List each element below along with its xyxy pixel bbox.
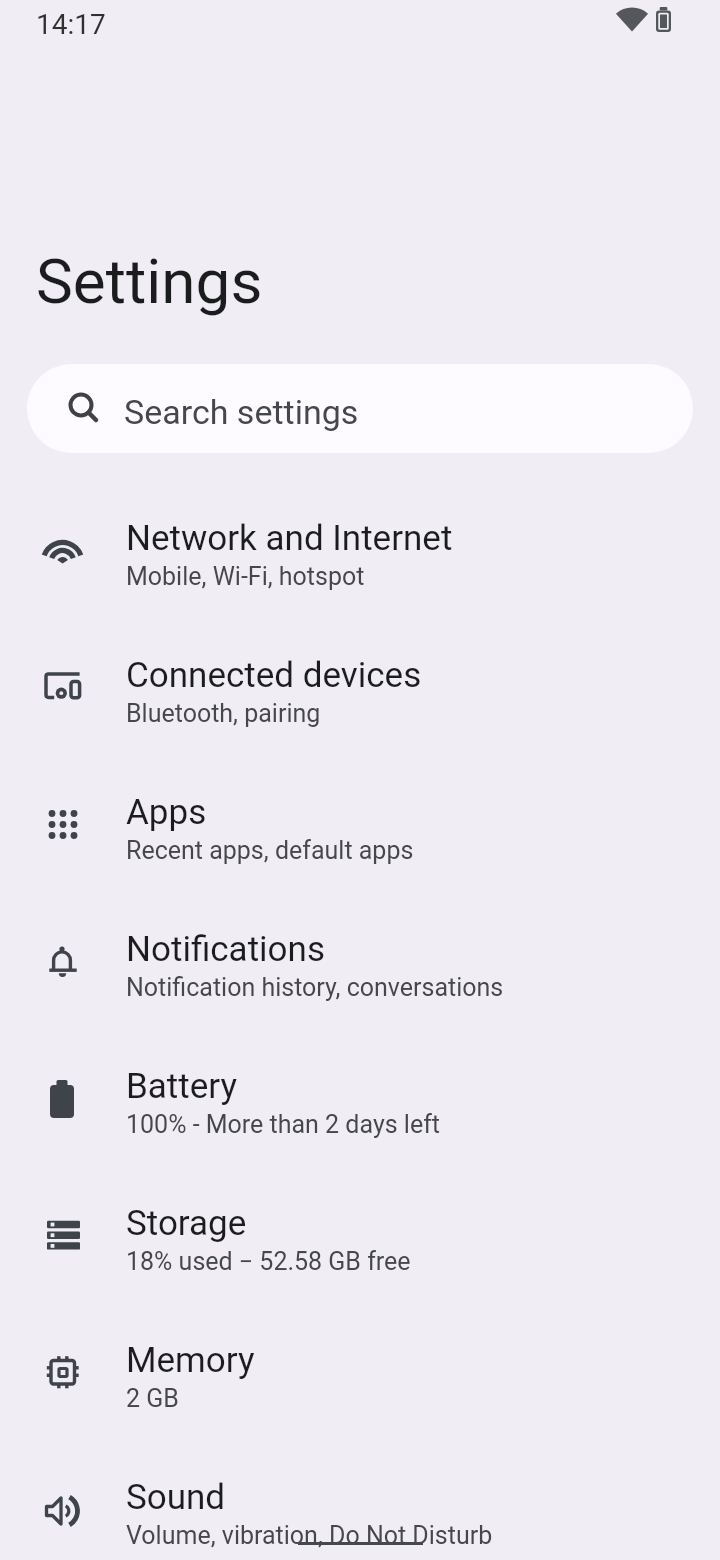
staticText: Mobile, Wi-Fi, hotspot [126, 562, 365, 591]
staticText: 18% used − 52.58 GB free [126, 1247, 411, 1276]
staticText: Sound [126, 1477, 226, 1518]
button[interactable]: Storage [0, 1169, 720, 1306]
button[interactable]: Apps [0, 758, 720, 895]
button[interactable]: Connected devices [0, 621, 720, 758]
button[interactable]: Battery [0, 1032, 720, 1169]
staticText: 2 GB [126, 1384, 179, 1413]
staticText: Search settings [124, 392, 359, 432]
staticText: Memory [126, 1340, 255, 1381]
staticText: Notification history, conversations [126, 973, 504, 1002]
staticText: Connected devices [126, 655, 422, 696]
button[interactable]: Search settings [27, 364, 693, 453]
staticText: Battery [126, 1066, 238, 1107]
button[interactable]: Network and Internet [0, 484, 720, 621]
staticText: Apps [126, 792, 207, 833]
staticText: Bluetooth, pairing [126, 699, 321, 728]
staticText: Volume, vibration, Do Not Disturb [126, 1521, 493, 1550]
button[interactable]: Notifications [0, 895, 720, 1032]
staticText: Recent apps, default apps [126, 836, 414, 865]
staticText: 14:17 [36, 8, 106, 41]
staticText: Settings [36, 245, 263, 318]
staticText: Network and Internet [126, 518, 453, 559]
staticText: Storage [126, 1203, 247, 1244]
button[interactable]: Memory [0, 1306, 720, 1443]
staticText: 100% - More than 2 days left [126, 1110, 441, 1139]
button[interactable]: Sound [0, 1443, 720, 1560]
staticText: Notifications [126, 929, 325, 970]
